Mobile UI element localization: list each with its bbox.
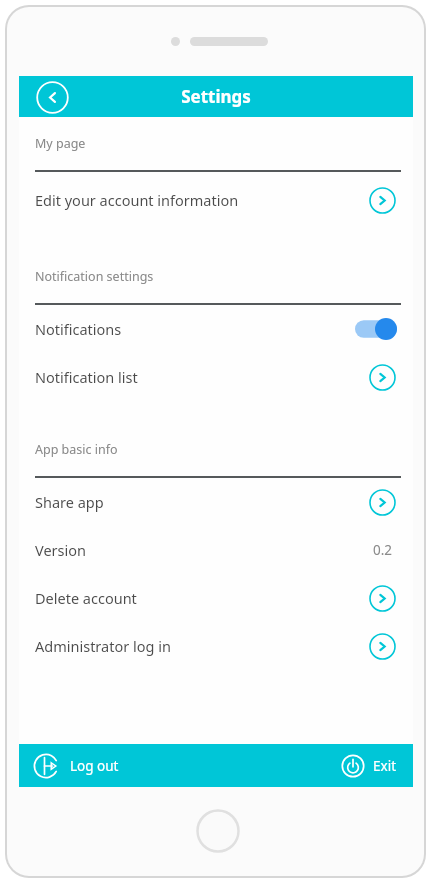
button[interactable]: Back (34, 79, 70, 115)
staticText: Delete account (35, 588, 137, 608)
staticText: App basic info (35, 441, 118, 458)
button[interactable]: Exit (329, 750, 413, 782)
button[interactable]: Delete account (19, 574, 413, 622)
staticText: Notification settings (35, 268, 154, 285)
staticText: Administrator log in (35, 636, 171, 656)
button[interactable]: Edit your account information (19, 172, 413, 228)
staticText: Notification list (35, 367, 138, 387)
staticText: Notifications (35, 319, 122, 339)
button[interactable]: Administrator log in (19, 622, 413, 670)
button[interactable]: Log out (19, 749, 131, 783)
staticText: Settings (181, 85, 251, 108)
staticText: Log out (70, 757, 119, 775)
staticText: Edit your account information (35, 190, 239, 210)
button[interactable]: Notification list (19, 353, 413, 401)
staticText: Version (35, 540, 86, 560)
staticText: My page (35, 135, 86, 152)
staticText: 0.2 (373, 541, 393, 559)
button[interactable]: Notifications (19, 305, 413, 353)
button[interactable]: Share app (19, 478, 413, 526)
button[interactable]: Version (19, 526, 413, 574)
staticText: Share app (35, 492, 104, 512)
staticText: Exit (373, 757, 397, 775)
